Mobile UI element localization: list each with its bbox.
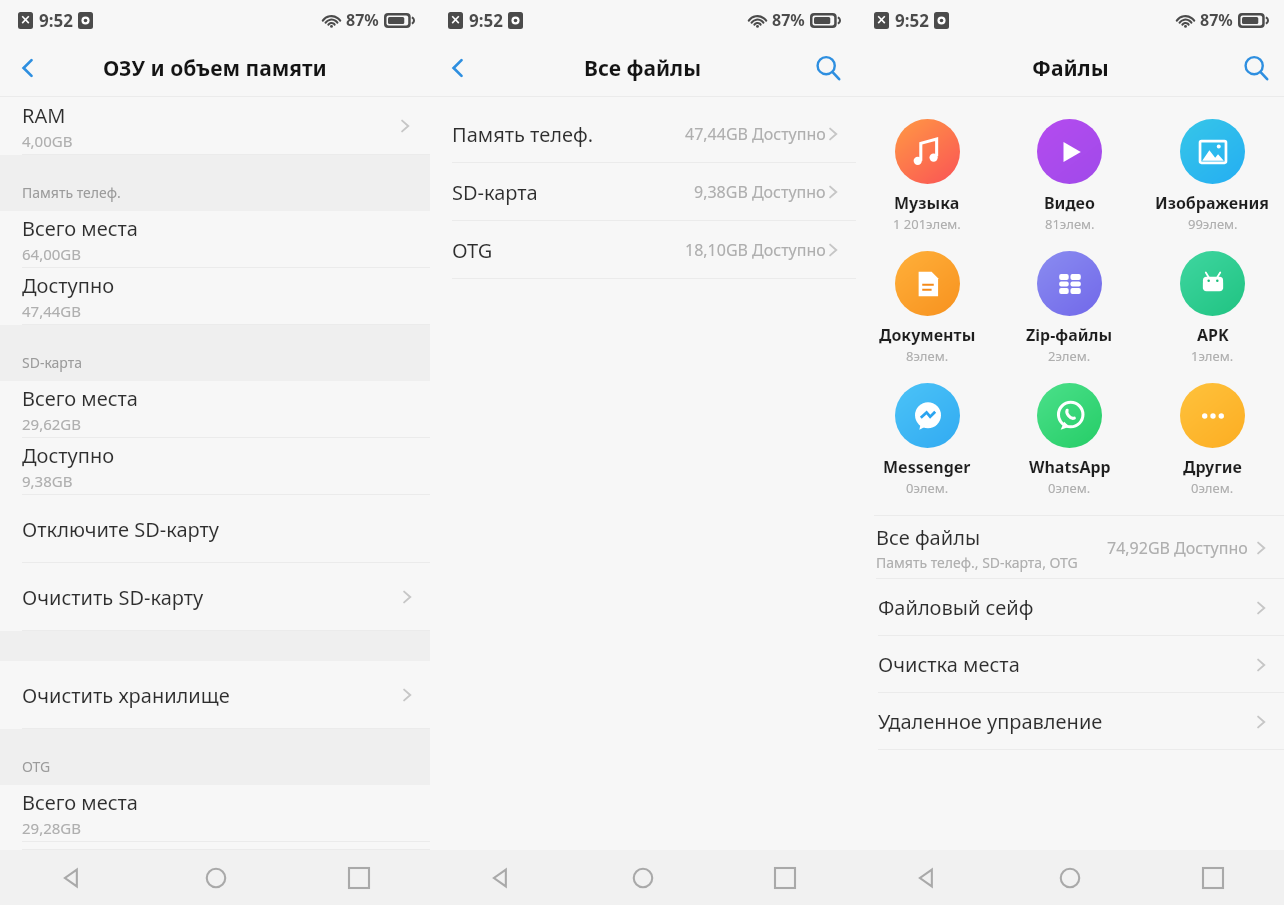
staticText: 47,44GB [22,301,82,321]
button[interactable]: Всего места [0,785,430,842]
staticText: 9,38GB [22,471,73,491]
button[interactable]: Очистить хранилище [0,661,430,729]
staticText: Отключите SD-карту [22,516,219,543]
staticText: 87% [1200,9,1233,31]
button[interactable]: Файловый сейф [856,579,1284,636]
staticText: Видео [1044,192,1095,214]
staticText: 0элем. [906,479,949,497]
staticText: 9,38GB Доступно [694,181,826,203]
staticText: 1 201элем. [893,215,961,233]
staticText: 2элем. [1048,347,1091,365]
staticText: OTG [22,757,51,776]
staticText: Память телеф., SD-карта, OTG [876,553,1078,572]
staticText: 1элем. [1191,347,1234,365]
button[interactable]: Messenger [856,377,998,503]
staticText: 9:52 [895,9,929,32]
button[interactable]: OTG [430,221,856,279]
staticText: APK [1197,324,1229,346]
button[interactable]: Документы [856,245,998,371]
staticText: 4,00GB [22,131,73,151]
staticText: Всего места [22,215,138,242]
staticText: 87% [772,9,805,31]
staticText: 8элем. [906,347,949,365]
button[interactable]: Home [144,850,287,905]
staticText: Все файлы [876,524,981,551]
staticText: OTG [452,237,493,264]
button[interactable]: Back [430,850,572,905]
button[interactable]: Изображения [1141,113,1284,239]
button[interactable]: Search [800,40,856,96]
staticText: Очистить хранилище [22,682,230,709]
staticText: 9:52 [39,9,73,32]
button[interactable]: Память телеф. [430,105,856,163]
button[interactable]: Очистка места [856,636,1284,693]
staticText: Другие [1183,456,1242,478]
button[interactable]: Очистить SD-карту [0,563,430,631]
button[interactable]: Видео [998,113,1141,239]
staticText: 9:52 [469,9,503,32]
staticText: Файлы [1032,54,1109,83]
staticText: Память телеф. [22,183,121,202]
button[interactable]: Удаленное управление [856,693,1284,750]
staticText: SD-карта [452,179,538,206]
staticText: Память телеф. [452,121,594,148]
staticText: 74,92GB Доступно [1107,537,1248,559]
button[interactable]: Доступно [0,268,430,325]
button[interactable]: Back [0,40,56,96]
staticText: 18,10GB Доступно [685,239,826,261]
staticText: Очистить SD-карту [22,584,204,611]
staticText: 0элем. [1191,479,1234,497]
button[interactable]: APK [1141,245,1284,371]
button[interactable]: Zip-файлы [998,245,1141,371]
staticText: Документы [879,324,976,346]
button[interactable]: Recents [1141,850,1284,905]
staticText: Удаленное управление [878,708,1103,735]
staticText: Изображения [1155,192,1270,214]
staticText: 47,44GB Доступно [685,123,826,145]
staticText: Zip-файлы [1026,324,1113,346]
button[interactable]: Back [430,40,486,96]
button[interactable]: Доступно [0,842,430,850]
button[interactable]: Home [998,850,1141,905]
staticText: 99элем. [1188,215,1238,233]
staticText: Messenger [883,456,971,478]
staticText: Файловый сейф [878,594,1034,621]
staticText: 0элем. [1048,479,1091,497]
staticText: Музыка [894,192,960,214]
button[interactable]: WhatsApp [998,377,1141,503]
button[interactable]: RAM [0,97,430,155]
button[interactable]: Другие [1141,377,1284,503]
staticText: Доступно [22,442,115,469]
staticText: Всего места [22,789,138,816]
button[interactable]: Всего места [0,211,430,268]
staticText: Всего места [22,385,138,412]
button[interactable]: Отключите SD-карту [0,495,430,563]
button[interactable]: Search [1228,40,1284,96]
staticText: Очистка места [878,651,1020,678]
staticText: Все файлы [584,54,702,83]
button[interactable]: Back [856,850,998,905]
staticText: 29,28GB [22,818,82,838]
staticText: Доступно [22,272,115,299]
button[interactable]: SD-карта [430,163,856,221]
button[interactable]: Музыка [856,113,998,239]
staticText: 81элем. [1045,215,1095,233]
staticText: 29,62GB [22,414,82,434]
staticText: ОЗУ и объем памяти [103,54,327,83]
staticText: 87% [346,9,379,31]
button[interactable]: Recents [714,850,856,905]
button[interactable]: Recents [287,850,430,905]
button[interactable]: Все файлы [856,516,1284,579]
staticText: 64,00GB [22,244,82,264]
staticText: SD-карта [22,353,83,372]
button[interactable]: Доступно [0,438,430,495]
staticText: RAM [22,102,66,129]
button[interactable]: Всего места [0,381,430,438]
button[interactable]: Home [572,850,714,905]
staticText: WhatsApp [1029,456,1111,478]
button[interactable]: Back [0,850,144,905]
staticText: Доступно [22,842,115,850]
